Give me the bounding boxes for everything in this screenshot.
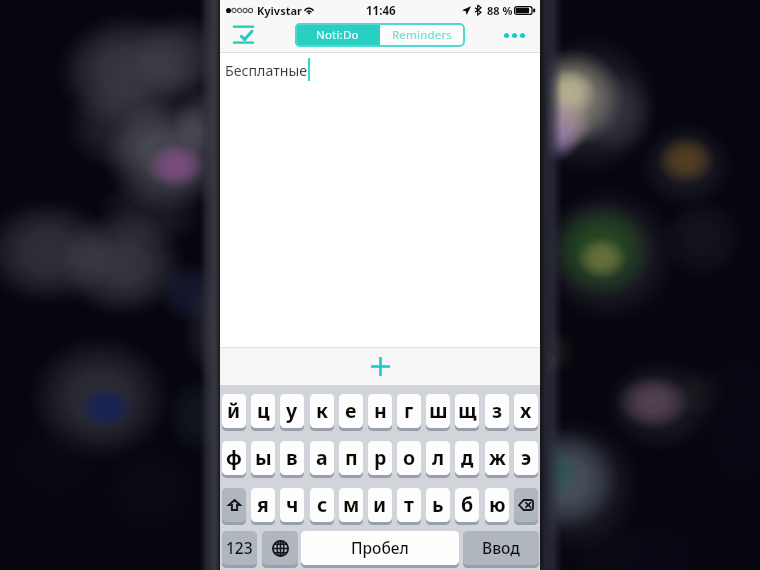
button[interactable]: х	[514, 394, 538, 428]
button[interactable]: к	[310, 394, 334, 428]
staticText: б	[461, 491, 474, 518]
button[interactable]: д	[455, 441, 479, 475]
staticText: и	[373, 491, 387, 518]
button[interactable]: ч	[280, 488, 304, 522]
staticText: ц	[257, 397, 270, 424]
button[interactable]: ц	[251, 394, 275, 428]
button[interactable]: а	[310, 441, 334, 475]
staticText: ю	[489, 491, 506, 518]
staticText: ч	[286, 491, 299, 518]
staticText: з	[492, 397, 503, 424]
staticText: х	[520, 397, 532, 424]
staticText: Пробел	[351, 537, 409, 558]
staticText: 11:46	[366, 3, 396, 19]
button[interactable]: Noti:Do logo	[228, 22, 255, 46]
button[interactable]: ь	[426, 488, 450, 522]
button[interactable]: н	[368, 394, 392, 428]
staticText: Reminders	[392, 27, 453, 43]
staticText: й	[227, 397, 241, 424]
staticText: ш	[429, 397, 448, 424]
button[interactable]: Backspace	[514, 488, 538, 522]
button[interactable]: ш	[426, 394, 450, 428]
staticText: м	[343, 491, 360, 518]
button[interactable]: Noti:Do	[295, 23, 380, 47]
staticText: ф	[226, 444, 242, 471]
staticText: ж	[489, 444, 506, 471]
button[interactable]: Change keyboard	[262, 531, 298, 565]
staticText: п	[345, 444, 358, 471]
button[interactable]: р	[368, 441, 392, 475]
button[interactable]: у	[280, 394, 304, 428]
staticText: 88 %	[487, 3, 513, 18]
button[interactable]: з	[485, 394, 509, 428]
staticText: т	[404, 491, 414, 518]
button[interactable]: More options	[498, 25, 531, 46]
button[interactable]: в	[280, 441, 304, 475]
button[interactable]: 123	[222, 531, 257, 565]
staticText: д	[461, 444, 474, 471]
button[interactable]: ю	[485, 488, 509, 522]
button[interactable]: т	[397, 488, 421, 522]
button[interactable]: е	[339, 394, 363, 428]
button[interactable]: щ	[455, 394, 479, 428]
staticText: Ввод	[482, 537, 520, 558]
button[interactable]: Пробел	[301, 531, 459, 565]
button[interactable]: ж	[485, 441, 509, 475]
button[interactable]: Add task	[220, 347, 540, 385]
button[interactable]: ы	[251, 441, 275, 475]
staticText: а	[316, 444, 328, 471]
button[interactable]: м	[339, 488, 363, 522]
staticText: Kyivstar	[257, 3, 302, 18]
button[interactable]: ф	[222, 441, 246, 475]
staticText: л	[432, 444, 445, 471]
staticText: я	[257, 491, 269, 518]
button[interactable]: б	[455, 488, 479, 522]
staticText: 123	[226, 537, 253, 558]
button[interactable]: Reminders	[380, 23, 465, 47]
button[interactable]: г	[397, 394, 421, 428]
button[interactable]: я	[251, 488, 275, 522]
button[interactable]: и	[368, 488, 392, 522]
staticText: с	[317, 491, 328, 518]
staticText: щ	[458, 397, 477, 424]
staticText: к	[316, 397, 329, 424]
staticText: в	[286, 444, 298, 471]
staticText: у	[286, 397, 298, 424]
button[interactable]: л	[426, 441, 450, 475]
button[interactable]: п	[339, 441, 363, 475]
staticText: о	[403, 444, 416, 471]
button[interactable]: й	[222, 394, 246, 428]
button[interactable]: э	[514, 441, 538, 475]
staticText: Бесплатные	[225, 61, 308, 80]
button[interactable]: о	[397, 441, 421, 475]
button[interactable]: с	[310, 488, 334, 522]
staticText: ы	[255, 444, 272, 471]
button[interactable]: Shift	[222, 488, 246, 522]
staticText: э	[521, 444, 532, 471]
staticText: е	[345, 397, 357, 424]
staticText: ь	[432, 491, 444, 518]
staticText: Noti:Do	[316, 27, 359, 43]
staticText: н	[374, 397, 387, 424]
button[interactable]: Ввод	[463, 531, 539, 565]
staticText: г	[404, 397, 414, 424]
staticText: р	[374, 444, 387, 471]
